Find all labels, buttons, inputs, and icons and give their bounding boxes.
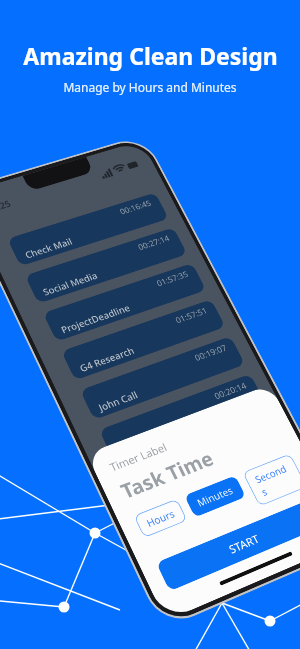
- staticText: 01:57:35: [154, 268, 190, 288]
- staticText: Social Media: [41, 269, 100, 298]
- button[interactable]: Seconds: [242, 453, 300, 507]
- staticText: Task Time: [116, 445, 218, 505]
- button[interactable]: 01:57:35: [43, 263, 206, 342]
- staticText: John Call: [96, 388, 140, 414]
- button[interactable]: 00:16:45: [7, 192, 169, 266]
- staticText: Check Mail: [23, 235, 74, 261]
- button[interactable]: Hours: [133, 498, 188, 538]
- button[interactable]: START: [156, 498, 300, 591]
- button[interactable]: 00:20:14: [99, 374, 265, 460]
- button[interactable]: Minutes: [184, 475, 246, 518]
- staticText: 00:19:07: [192, 341, 228, 363]
- staticText: 00:16:45: [118, 197, 153, 216]
- staticText: Seconds: [252, 461, 297, 499]
- staticText: Workout: [135, 467, 180, 495]
- staticText: 00:27:14: [136, 232, 171, 252]
- staticText: ProjectDeadline: [59, 301, 132, 336]
- staticText: Hours: [144, 506, 177, 530]
- staticText: 00:20:14: [212, 379, 248, 401]
- staticText: Manage by Hours and Minutes: [63, 79, 237, 95]
- staticText: Timer Label: [107, 439, 169, 474]
- button[interactable]: 00:27:14: [25, 227, 187, 304]
- staticText: 10:25: [0, 197, 13, 215]
- staticText: Read Book: [115, 424, 168, 454]
- staticText: Amazing Clean Design: [23, 40, 278, 71]
- staticText: Minutes: [194, 483, 236, 510]
- staticText: 01:57:51: [173, 304, 209, 325]
- staticText: G4 Research: [77, 344, 137, 375]
- button[interactable]: 01:57:51: [61, 299, 226, 380]
- staticText: START: [226, 531, 262, 557]
- button[interactable]: 00:45:00: [118, 412, 286, 501]
- button[interactable]: 00:19:07: [80, 336, 245, 420]
